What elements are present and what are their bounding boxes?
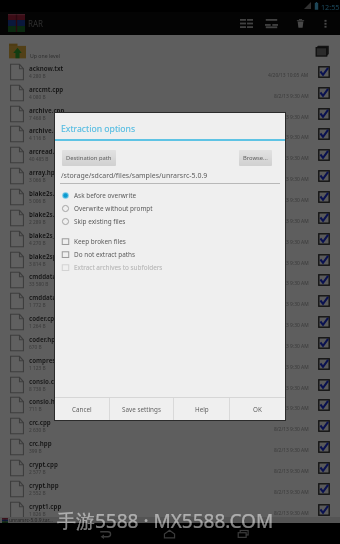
- staticText: 8/2/13 9:30 AM: [274, 364, 309, 371]
- button[interactable]: archive.cpp: [0, 103, 340, 124]
- button[interactable]: Recent apps: [232, 523, 255, 544]
- button[interactable]: blake2s.hpp: [0, 207, 340, 228]
- button[interactable]: Back: [94, 523, 117, 544]
- staticText: Extraction options: [61, 123, 136, 135]
- staticText: 4 270 B: [29, 240, 46, 247]
- staticText: blake2s.hpp: [29, 210, 67, 218]
- staticText: Browse...: [243, 154, 268, 162]
- staticText: Cancel: [72, 405, 92, 414]
- staticText: 2 630 B: [29, 427, 46, 434]
- button[interactable]: crc.cpp: [0, 415, 340, 436]
- staticText: compress.hpp: [29, 356, 73, 364]
- staticText: Help: [195, 405, 209, 414]
- staticText: crypt.hpp: [29, 481, 59, 489]
- staticText: 8/2/13 9:30 AM: [274, 197, 309, 204]
- staticText: Save settings: [122, 405, 161, 414]
- staticText: 8/2/13 9:30 AM: [274, 280, 309, 287]
- staticText: 4 280 B: [29, 73, 46, 80]
- staticText: arcread.cpp: [29, 147, 66, 155]
- staticText: 8/2/13 9:30 AM: [274, 301, 309, 308]
- button[interactable]: array.hpp: [0, 165, 340, 186]
- staticText: /storage/sdcard/files/samples/unrarsrc-5…: [61, 171, 208, 181]
- staticText: 3 814 B: [29, 261, 46, 268]
- button[interactable]: Skip existing files: [61, 215, 285, 228]
- button[interactable]: coder.cpp: [0, 311, 340, 332]
- button[interactable]: crypt.cpp: [0, 457, 340, 478]
- button[interactable]: blake2s_sse.cpp: [0, 228, 340, 249]
- button[interactable]: consio.cpp: [0, 374, 340, 395]
- button[interactable]: Destination path: [62, 150, 116, 166]
- staticText: 2 577 B: [29, 469, 46, 476]
- button[interactable]: cmddata.cpp: [0, 269, 340, 290]
- button[interactable]: blake2sp.cpp: [0, 249, 340, 270]
- staticText: unrarsrc-5.0.9.tar...: [9, 517, 53, 523]
- button[interactable]: crc.hpp: [0, 436, 340, 457]
- staticText: 8/2/13 9:30 AM: [274, 114, 309, 121]
- staticText: 1 826 B: [29, 511, 46, 518]
- button[interactable]: crypt.hpp: [0, 478, 340, 499]
- staticText: 4 080 B: [29, 94, 46, 101]
- staticText: 8/2/13 9:30 AM: [274, 343, 309, 350]
- staticText: 8/2/13 9:30 AM: [274, 176, 309, 183]
- staticText: Keep broken files: [74, 237, 126, 246]
- button[interactable]: Do not extract paths: [61, 248, 285, 261]
- staticText: 3 066 B: [29, 177, 46, 184]
- button[interactable]: blake2s.cpp: [0, 186, 340, 207]
- staticText: 8/2/13 9:30 AM: [274, 510, 309, 517]
- button[interactable]: View mode: [258, 12, 284, 35]
- staticText: 8/2/13 9:30 AM: [274, 260, 309, 267]
- staticText: 1 123 B: [29, 365, 46, 372]
- button[interactable]: archive.hpp: [0, 123, 340, 144]
- staticText: Do not extract paths: [74, 250, 136, 259]
- button[interactable]: Home: [158, 523, 181, 544]
- button[interactable]: Ask before overwrite: [61, 189, 285, 202]
- button[interactable]: arcread.cpp: [0, 144, 340, 165]
- staticText: 8/2/13 9:30 AM: [274, 447, 309, 454]
- staticText: OK: [253, 405, 262, 414]
- staticText: crypt1.cpp: [29, 502, 62, 510]
- button[interactable]: Cancel: [55, 398, 109, 420]
- button[interactable]: More options: [312, 12, 338, 35]
- button[interactable]: Up one level: [0, 40, 340, 61]
- staticText: 12:55: [321, 2, 340, 12]
- staticText: blake2sp.cpp: [29, 252, 70, 260]
- staticText: coder.cpp: [29, 314, 59, 322]
- staticText: cmddata.hpp: [29, 293, 70, 301]
- staticText: 5 006 B: [29, 198, 46, 205]
- staticText: blake2s_sse.cpp: [29, 231, 78, 239]
- staticText: 8/2/13 9:30 AM: [274, 239, 309, 246]
- button[interactable]: Save settings: [110, 398, 173, 420]
- staticText: consio.cpp: [29, 377, 62, 385]
- staticText: 4 116 B: [29, 135, 46, 142]
- staticText: archive.cpp: [29, 106, 65, 114]
- button[interactable]: coder.hpp: [0, 332, 340, 353]
- button[interactable]: crypt1.cpp: [0, 499, 340, 520]
- button[interactable]: compress.hpp: [0, 353, 340, 374]
- button[interactable]: OK: [230, 398, 285, 420]
- staticText: 8/2/13 9:30 AM: [274, 426, 309, 433]
- button[interactable]: cmddata.hpp: [0, 290, 340, 311]
- button[interactable]: Browse...: [239, 150, 272, 166]
- staticText: acknow.txt: [29, 64, 64, 72]
- button[interactable]: Sort order: [233, 12, 259, 35]
- staticText: RAR: [28, 18, 44, 29]
- staticText: 8 738 B: [29, 386, 46, 393]
- staticText: 1 264 B: [29, 323, 46, 330]
- button[interactable]: arccmt.cpp: [0, 82, 340, 103]
- staticText: 8/2/13 9:30 AM: [274, 468, 309, 475]
- button[interactable]: Overwrite without prompt: [61, 202, 285, 215]
- staticText: 手游5588 · MX5588.COM: [57, 508, 274, 534]
- staticText: 8/2/13 9:30 AM: [274, 385, 309, 392]
- button[interactable]: Delete: [287, 12, 313, 35]
- staticText: 7 468 B: [29, 115, 46, 122]
- button[interactable]: Help: [174, 398, 229, 420]
- button[interactable]: consio.hpp: [0, 394, 340, 415]
- button[interactable]: Extract archives to subfolders: [61, 261, 285, 274]
- staticText: 8/2/13 9:30 AM: [274, 489, 309, 496]
- button[interactable]: acknow.txt: [0, 61, 340, 82]
- button[interactable]: Keep broken files: [61, 235, 285, 248]
- staticText: 40 485 B: [29, 156, 49, 163]
- staticText: 8/2/13 9:30 AM: [274, 134, 309, 141]
- staticText: 711 B: [29, 406, 42, 413]
- staticText: 670 B: [29, 344, 42, 351]
